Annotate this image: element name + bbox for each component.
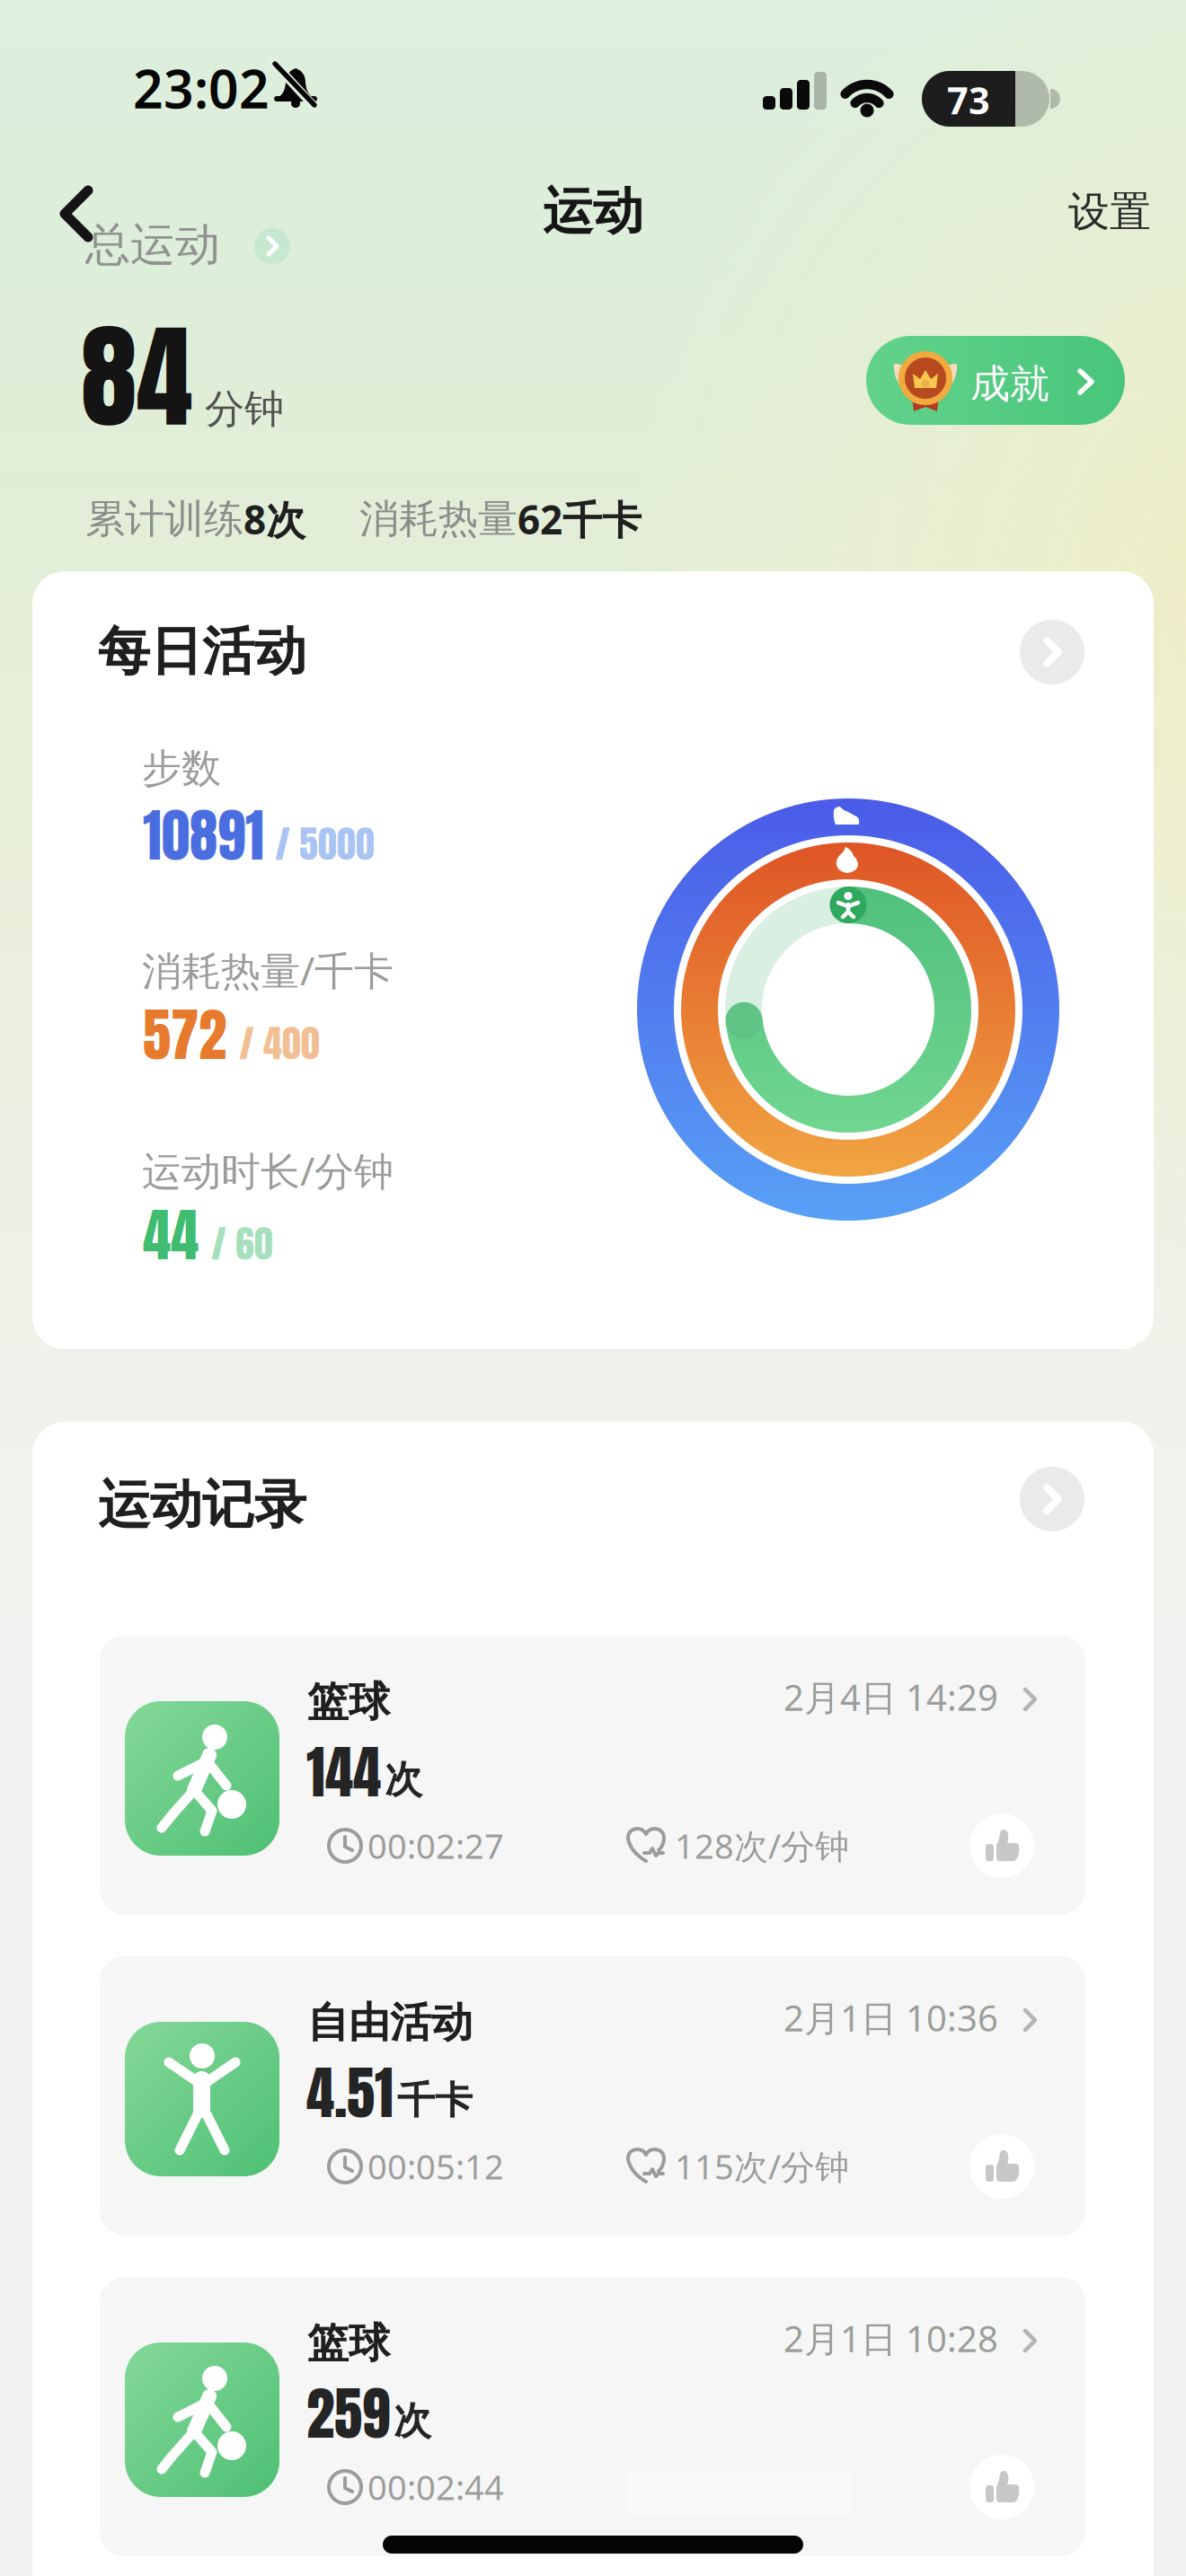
staticText: 2月4日 14:29 — [783, 1672, 998, 1721]
staticText: 消耗热量 — [359, 494, 518, 544]
staticText: 572 — [143, 992, 226, 1078]
staticText: 总运动 — [85, 216, 220, 273]
staticText: 10891 — [143, 793, 264, 878]
staticText: 次 — [394, 2397, 431, 2445]
button[interactable]: All records — [1020, 1467, 1084, 1531]
staticText: 运动记录 — [98, 1472, 306, 1538]
staticText: 运动 — [543, 180, 643, 243]
staticText: 144 — [306, 1730, 381, 1815]
staticText: 62千卡 — [518, 492, 642, 546]
staticText: 23:02 — [133, 52, 270, 124]
button[interactable]: Back — [56, 187, 97, 241]
staticText: 115次/分钟 — [675, 2143, 849, 2190]
staticText: 00:05:12 — [367, 2143, 504, 2190]
button[interactable]: Like — [969, 1813, 1034, 1878]
staticText: 每日活动 — [98, 619, 306, 685]
staticText: / 60 — [211, 1215, 273, 1272]
staticText: 2月1日 10:28 — [783, 2314, 998, 2363]
staticText: 4.51 — [306, 2051, 394, 2136]
staticText: 成就 — [970, 359, 1049, 409]
staticText: 00:02:44 — [367, 2464, 504, 2510]
staticText: 篮球 — [307, 2317, 390, 2369]
button[interactable]: Daily activity details — [1020, 620, 1084, 684]
staticText: 千卡 — [397, 2077, 473, 2124]
staticText: 自由活动 — [307, 1997, 473, 2049]
staticText: 259 — [306, 2371, 390, 2456]
staticText: 84 — [81, 292, 192, 462]
staticText: 44 — [143, 1193, 199, 1278]
staticText: 2月1日 10:36 — [783, 1993, 998, 2042]
staticText: 篮球 — [307, 1676, 390, 1728]
button[interactable]: Like — [969, 2455, 1034, 2519]
button[interactable]: 成就 — [866, 336, 1125, 425]
button[interactable]: 自由活动 — [100, 1956, 1085, 2236]
staticText: 128次/分钟 — [675, 1822, 849, 1869]
button[interactable]: 总运动 — [85, 216, 290, 276]
staticText: 累计训练 — [85, 494, 243, 544]
staticText: 步数 — [142, 744, 221, 793]
button[interactable]: 篮球 — [100, 1636, 1085, 1915]
staticText: 消耗热量/千卡 — [142, 943, 394, 997]
staticText: 00:02:27 — [367, 1822, 504, 1869]
button[interactable]: 设置 — [1068, 186, 1151, 238]
staticText: 分钟 — [205, 384, 284, 434]
staticText: / 5000 — [275, 816, 375, 872]
staticText: 73 — [947, 75, 990, 125]
staticText: 运动时长/分钟 — [142, 1143, 394, 1197]
staticText: 设置 — [1068, 186, 1151, 238]
staticText: / 400 — [239, 1015, 320, 1072]
staticText: 次 — [385, 1756, 422, 1803]
staticText: 8次 — [243, 492, 305, 546]
button[interactable]: 篮球 — [100, 2277, 1085, 2556]
button[interactable]: Like — [969, 2134, 1034, 2199]
